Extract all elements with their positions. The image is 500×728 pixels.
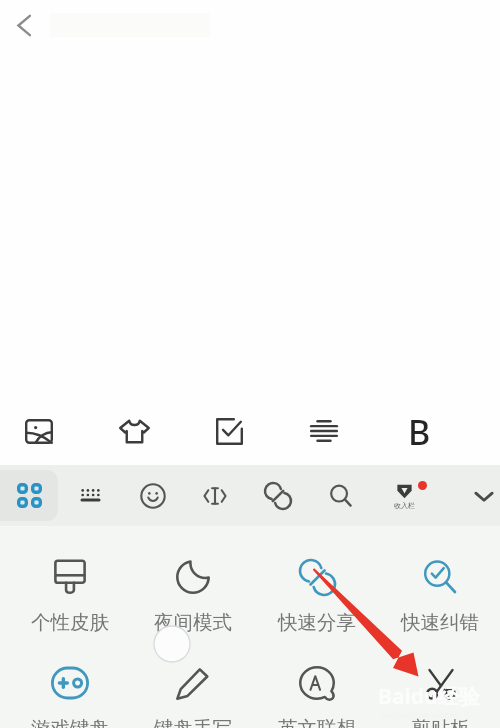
staticText: jingyan.baidu.com (380, 708, 458, 720)
button[interactable]: 个性皮肤 (14, 557, 126, 649)
staticText: 个性皮肤 (31, 610, 109, 635)
button[interactable]: Alignment (302, 409, 346, 453)
button[interactable]: 夜间模式 (137, 557, 249, 649)
staticText: 游戏键盘 (31, 716, 109, 728)
button[interactable]: Favorites (382, 465, 426, 526)
button[interactable]: Emoji (131, 465, 175, 526)
button[interactable]: 剪贴板 (384, 663, 496, 728)
button[interactable]: Keyboard (68, 465, 112, 526)
button[interactable]: Skin (112, 409, 156, 453)
button[interactable]: 游戏键盘 (14, 663, 126, 728)
staticText: 快速分享 (278, 610, 356, 635)
button[interactable]: Panels (0, 470, 58, 521)
staticText: B (408, 409, 431, 453)
button[interactable]: Insert image (17, 409, 61, 453)
button[interactable]: Link (256, 465, 300, 526)
staticText: 剪贴板 (411, 716, 470, 728)
button[interactable]: 英文联想 (261, 663, 373, 728)
staticText: 英文联想 (278, 716, 356, 728)
button[interactable]: Text cursor (193, 465, 237, 526)
button[interactable]: Back (5, 7, 42, 44)
button[interactable]: 快速分享 (261, 557, 373, 649)
staticText: 键盘手写 (154, 716, 232, 728)
button[interactable]: Collapse keyboard (462, 465, 500, 526)
staticText: 收入栏 (394, 501, 415, 510)
staticText: 快速纠错 (401, 610, 479, 635)
button[interactable]: Bold (397, 409, 441, 453)
button[interactable]: Checkbox (207, 409, 251, 453)
button[interactable]: Search (319, 465, 363, 526)
staticText: Baidu经验 (378, 682, 480, 711)
button[interactable]: 快速纠错 (384, 557, 496, 649)
staticText: 夜间模式 (154, 610, 232, 635)
button[interactable]: 键盘手写 (137, 663, 249, 728)
